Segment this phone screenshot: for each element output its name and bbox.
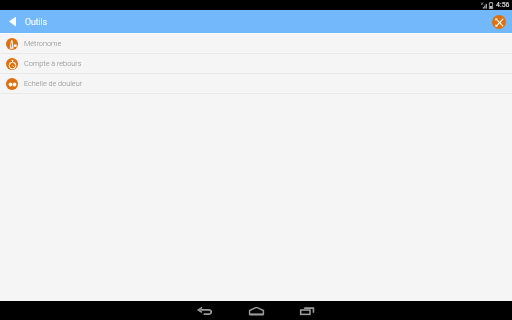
staticText: Outils (25, 17, 48, 27)
button[interactable]: Compte à rebours (0, 54, 512, 74)
staticText: Echelle de douleur (24, 79, 83, 88)
button[interactable]: Back (186, 301, 224, 320)
staticText: 4:56 (496, 1, 510, 9)
button[interactable]: Tools (492, 15, 506, 29)
button[interactable]: Back (0, 10, 56, 33)
other: Back (9, 17, 16, 26)
button[interactable]: Recent apps (288, 301, 326, 320)
button[interactable]: Home (237, 301, 275, 320)
staticText: Métronome (24, 39, 62, 48)
button[interactable]: Echelle de douleur (0, 74, 512, 94)
button[interactable]: Métronome (0, 34, 512, 54)
staticText: Compte à rebours (24, 59, 82, 68)
